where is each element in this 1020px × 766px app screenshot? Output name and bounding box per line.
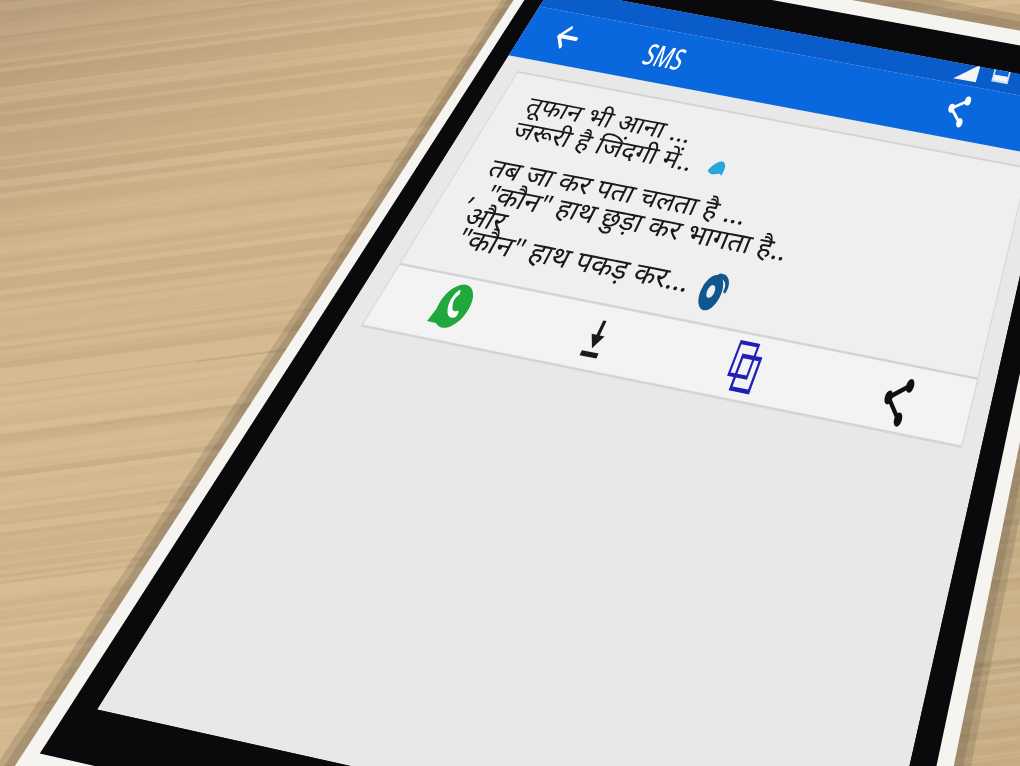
button[interactable]: SMS message screen [0, 0, 1020, 766]
